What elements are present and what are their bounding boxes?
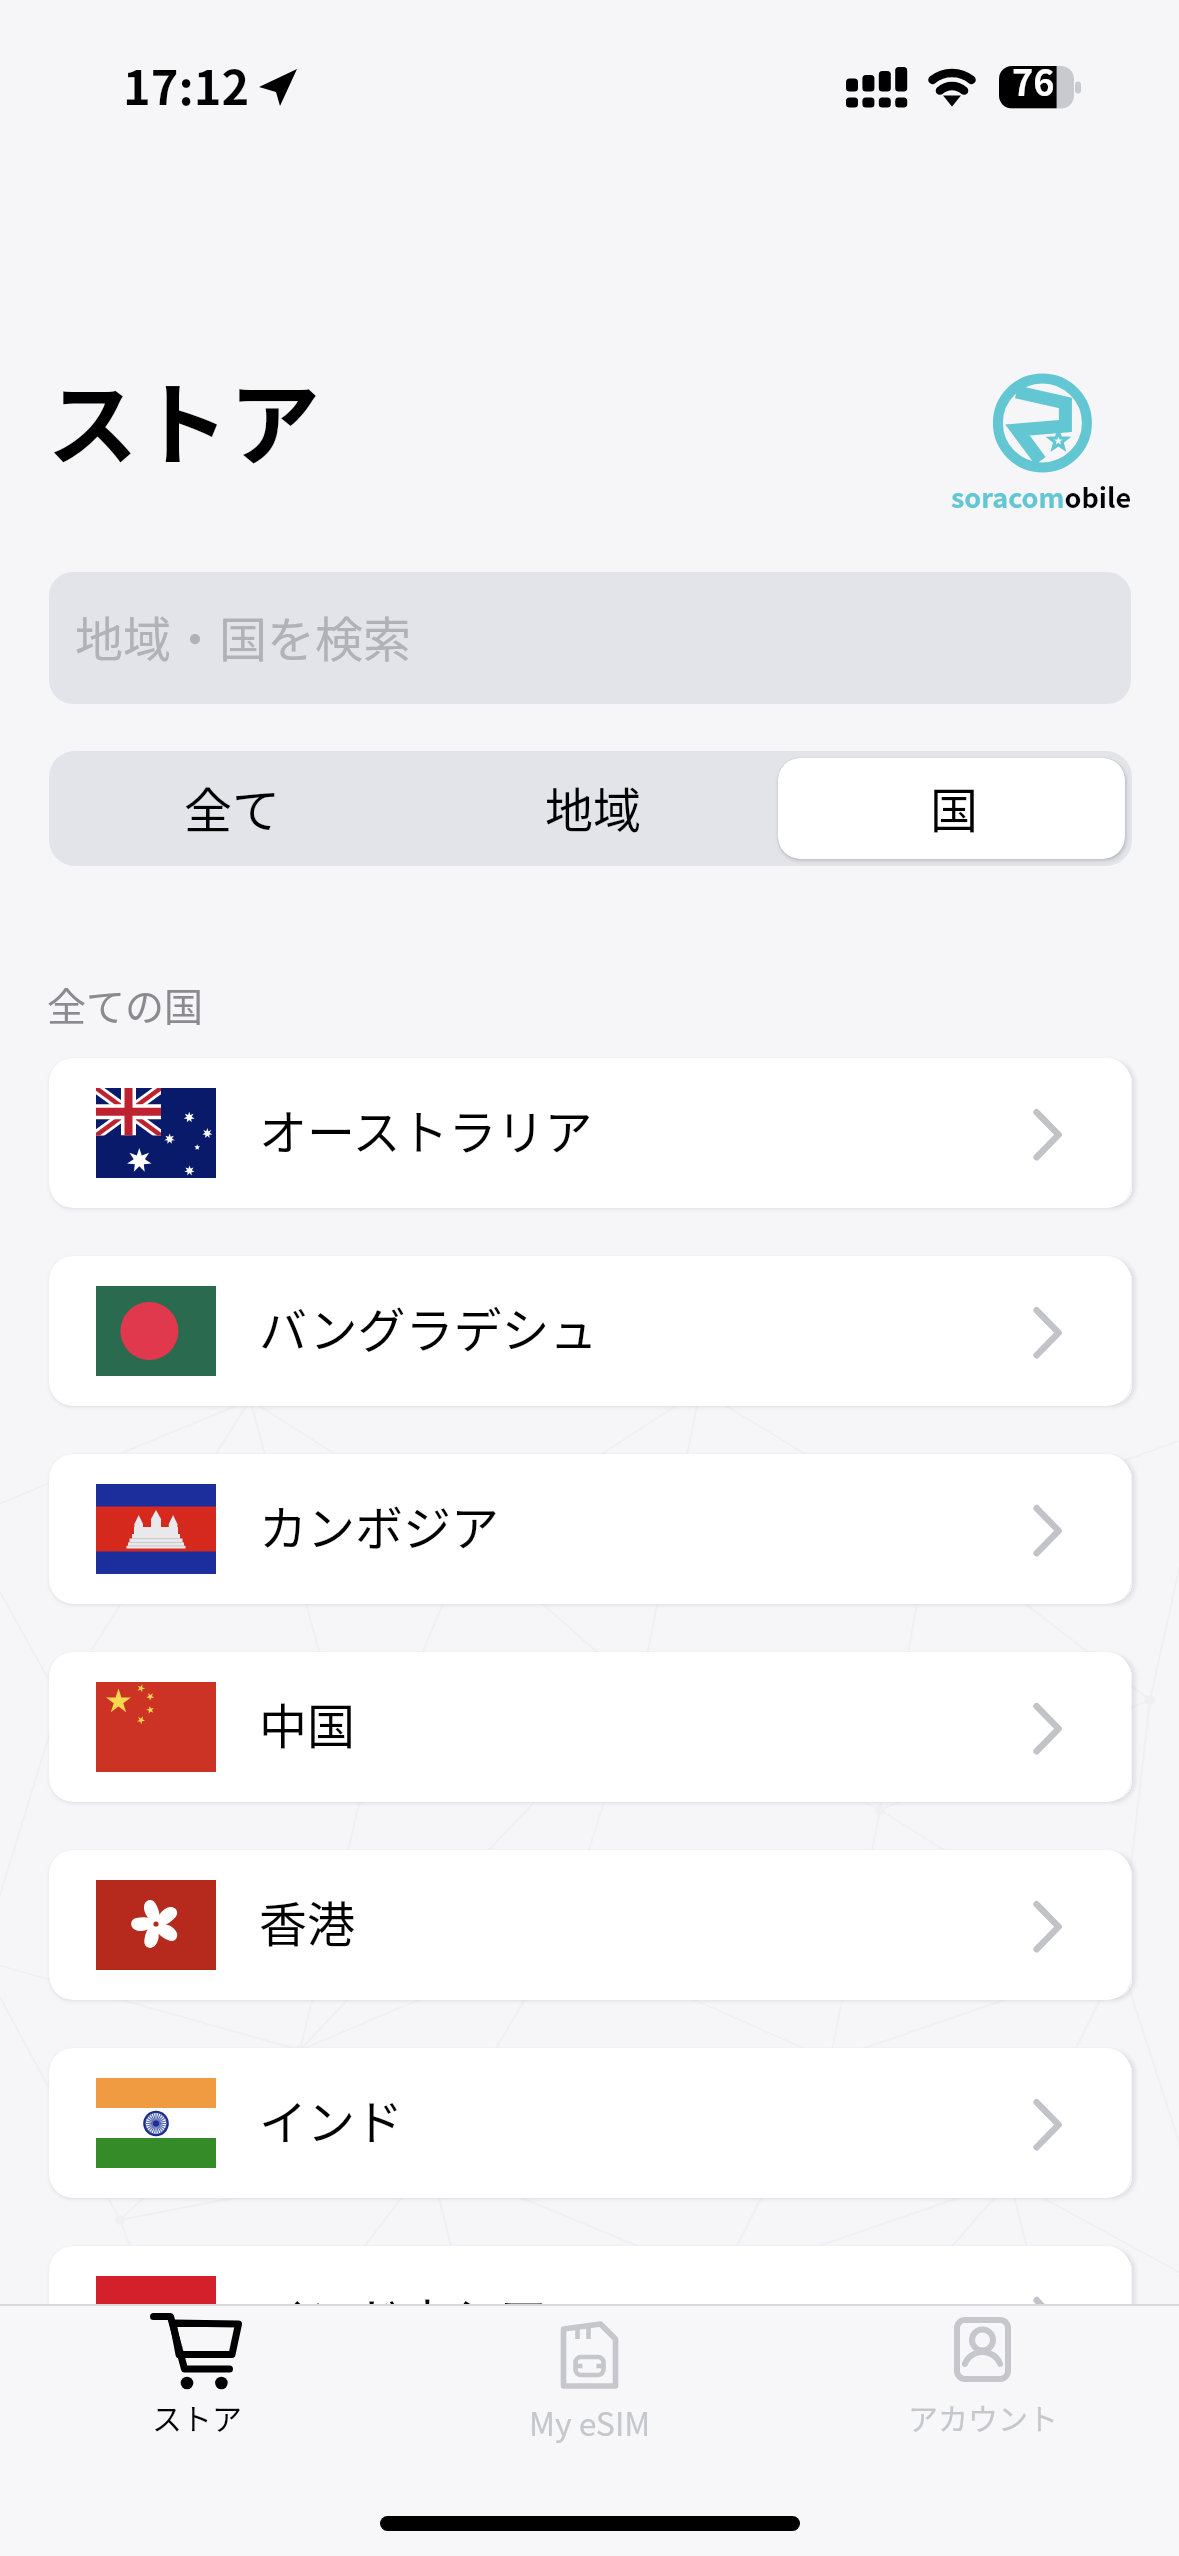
button[interactable]: soracom mobile <box>940 360 1150 520</box>
staticText: soracomobile <box>951 477 1132 516</box>
staticText: 国 <box>930 772 979 842</box>
staticText: アカウント <box>908 2395 1058 2438</box>
button[interactable]: 中国 <box>49 1652 1131 1802</box>
staticText: バングラデシュ <box>259 1292 598 1362</box>
button[interactable]: 地域・国を検索 <box>49 572 1131 704</box>
button[interactable]: アカウント <box>786 2304 1179 2464</box>
button[interactable]: 地域 <box>410 751 771 866</box>
button[interactable]: カンボジア <box>49 1454 1131 1604</box>
staticText: 全ての国 <box>47 976 204 1032</box>
button[interactable]: オーストラリア <box>49 1058 1131 1208</box>
staticText: オーストラリア <box>259 1094 593 1164</box>
button[interactable]: インド <box>49 2048 1131 2198</box>
button[interactable]: 香港 <box>49 1850 1131 2000</box>
staticText: ストア <box>152 2395 242 2438</box>
staticText: カンボジア <box>259 1490 500 1560</box>
staticText: 76 <box>1012 54 1055 106</box>
staticText: 17:12 <box>123 50 250 118</box>
button[interactable]: バングラデシュ <box>49 1256 1131 1406</box>
staticText: 中国 <box>259 1688 356 1758</box>
staticText: My eSIM <box>529 2399 651 2445</box>
staticText: ストア <box>47 352 321 484</box>
button[interactable]: ストア <box>0 2304 393 2464</box>
button[interactable]: インドネシア <box>49 2246 1131 2396</box>
staticText: 香港 <box>259 1886 356 1956</box>
button[interactable]: 全て <box>49 751 410 866</box>
staticText: 全て <box>184 772 281 842</box>
staticText: インド <box>259 2084 404 2154</box>
staticText: インドネシア <box>259 2282 548 2352</box>
staticText: 地域・国を検索 <box>75 601 412 671</box>
button[interactable]: My eSIM <box>393 2304 786 2464</box>
staticText: 地域 <box>545 772 642 842</box>
button[interactable]: 国 <box>771 751 1132 866</box>
